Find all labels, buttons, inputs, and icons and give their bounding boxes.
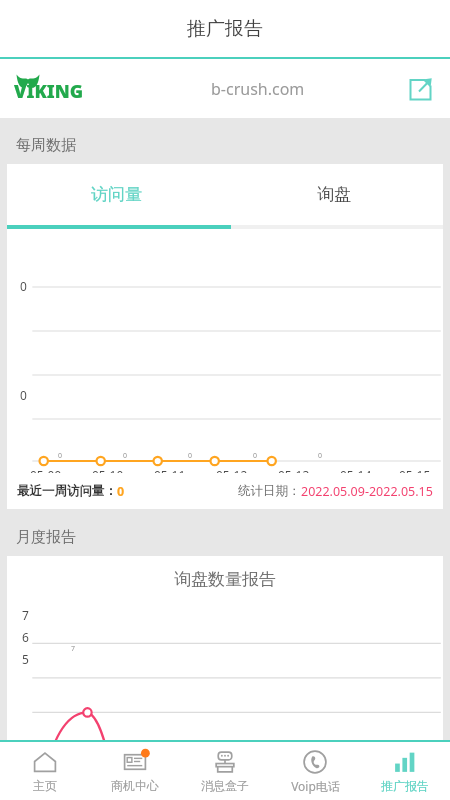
staticText: 消息盒子	[201, 778, 249, 793]
staticText: VIKING	[14, 79, 84, 104]
staticText: 询盘	[317, 184, 351, 205]
staticText: 商机中心	[111, 778, 159, 793]
staticText: 0	[123, 451, 128, 461]
button[interactable]: 主页	[0, 742, 90, 800]
button[interactable]: 访问量	[7, 164, 225, 225]
button[interactable]: 推广报告	[360, 742, 450, 800]
staticText: 05-14	[340, 467, 372, 473]
staticText: 推广报告	[187, 17, 263, 41]
staticText: 05-10	[92, 467, 124, 473]
staticText: 0	[58, 451, 63, 461]
staticText: 0	[20, 387, 27, 403]
staticText: 月度报告	[16, 528, 76, 547]
staticText: 0	[20, 278, 27, 294]
button[interactable]: Voip电话	[270, 742, 360, 800]
staticText: 最近一周访问量：	[17, 483, 117, 499]
staticText: 0	[117, 483, 125, 500]
button[interactable]: 消息盒子	[180, 742, 270, 800]
staticText: 询盘数量报告	[174, 569, 276, 590]
staticText: 访问量	[91, 184, 142, 205]
staticText: Voip电话	[291, 778, 340, 794]
staticText: 0	[253, 451, 258, 461]
button[interactable]: Open website	[402, 71, 438, 107]
staticText: 0	[318, 451, 323, 461]
staticText: 每周数据	[16, 136, 76, 155]
staticText: 7	[22, 607, 29, 623]
staticText: 05-13	[278, 467, 310, 473]
staticText: 5	[22, 651, 29, 667]
staticText: 2022.05.09-2022.05.15	[301, 483, 433, 500]
staticText: 05-12	[216, 467, 248, 473]
button[interactable]: 商机中心	[90, 742, 180, 800]
button[interactable]: 询盘	[225, 164, 443, 225]
staticText: 0	[188, 451, 193, 461]
staticText: 6	[22, 629, 29, 645]
staticText: 05-11	[154, 467, 186, 473]
staticText: 主页	[33, 778, 57, 793]
staticText: 05-09	[30, 467, 62, 473]
staticText: 统计日期：	[238, 483, 301, 499]
staticText: 05-15	[399, 467, 431, 473]
staticText: 7	[71, 644, 76, 654]
staticText: b-crush.com	[211, 78, 305, 100]
staticText: 推广报告	[381, 778, 429, 793]
